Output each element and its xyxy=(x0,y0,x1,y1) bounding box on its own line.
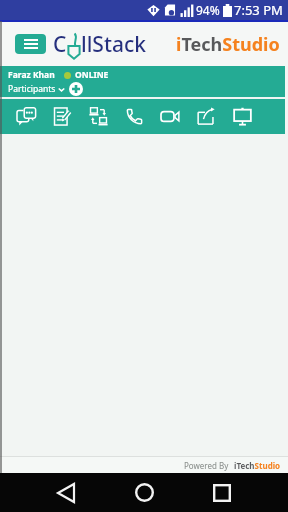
button[interactable] xyxy=(80,99,116,134)
button[interactable] xyxy=(114,473,174,512)
staticText: 7:53 PM xyxy=(234,1,283,19)
button[interactable]: Participants xyxy=(8,82,83,96)
button[interactable] xyxy=(224,99,260,134)
staticText: C xyxy=(53,30,67,59)
staticText: Participants xyxy=(8,83,56,95)
staticText: iTechStudio xyxy=(234,460,281,471)
staticText: iTechStudio xyxy=(176,32,280,57)
button[interactable] xyxy=(188,99,224,134)
button[interactable] xyxy=(8,99,44,134)
staticText: ONLINE xyxy=(75,69,109,81)
staticText: 94% xyxy=(196,2,220,18)
staticText: Powered By xyxy=(184,460,229,471)
button[interactable] xyxy=(192,473,252,512)
button[interactable] xyxy=(36,473,96,512)
button[interactable] xyxy=(116,99,152,134)
button[interactable] xyxy=(44,99,80,134)
staticText: llStack xyxy=(81,30,146,59)
staticText: Faraz Khan xyxy=(8,69,55,81)
button[interactable] xyxy=(152,99,188,134)
button[interactable] xyxy=(15,34,46,54)
